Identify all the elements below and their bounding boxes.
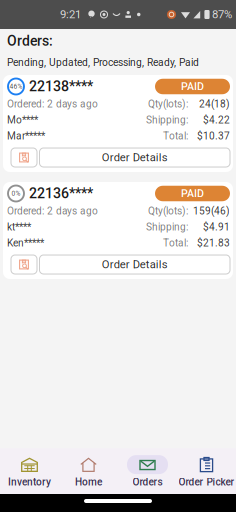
staticText: 9:21 — [60, 8, 81, 21]
staticText: Order Details — [102, 151, 168, 164]
staticText: 46% — [9, 83, 22, 90]
button[interactable]: PAID — [155, 79, 230, 94]
staticText: 24(18) — [199, 98, 230, 110]
button[interactable]: PAID — [155, 186, 230, 201]
staticText: 0% — [11, 190, 20, 197]
staticText: Order Picker — [178, 476, 234, 488]
staticText: PAID — [181, 80, 204, 93]
staticText: Order Details — [102, 258, 168, 271]
button[interactable]: Order Details — [39, 255, 230, 274]
staticText: Inventory — [8, 476, 51, 488]
staticText: Ordered: 2 days ago — [7, 98, 98, 110]
staticText: Total: — [163, 130, 188, 142]
staticText: Mo**** — [7, 114, 38, 126]
staticText: Ken***** — [7, 237, 44, 249]
button[interactable]: Inventory — [0, 455, 59, 488]
button[interactable]: Inspect order items — [11, 255, 37, 274]
button[interactable]: Home — [59, 455, 118, 488]
staticText: Orders — [132, 476, 162, 488]
staticText: Mar***** — [7, 130, 45, 142]
staticText: Qty(lots): — [148, 98, 188, 110]
staticText: PAID — [181, 187, 204, 200]
staticText: $10.37 — [197, 130, 230, 142]
staticText: Orders: — [7, 33, 53, 49]
button[interactable]: Orders — [118, 455, 177, 488]
staticText: 22138**** — [29, 78, 93, 95]
staticText: Qty(lots): — [148, 205, 188, 217]
button[interactable]: Order Picker — [177, 455, 236, 488]
staticText: Home — [75, 476, 102, 488]
staticText: 159(46) — [193, 205, 230, 217]
staticText: 22136**** — [29, 185, 93, 202]
staticText: Shipping: — [146, 114, 188, 126]
staticText: Pending, Updated, Processing, Ready, Pai… — [7, 56, 199, 68]
staticText: $21.83 — [197, 237, 230, 249]
staticText: 87% — [212, 8, 232, 21]
staticText: Total: — [163, 237, 188, 249]
staticText: kt**** — [7, 221, 31, 233]
staticText: Shipping: — [146, 221, 188, 233]
button[interactable]: Inspect order items — [11, 148, 37, 167]
button[interactable]: Order Details — [39, 148, 230, 167]
staticText: Ordered: 2 days ago — [7, 205, 98, 217]
staticText: $4.91 — [203, 221, 230, 233]
staticText: $4.22 — [203, 114, 230, 126]
